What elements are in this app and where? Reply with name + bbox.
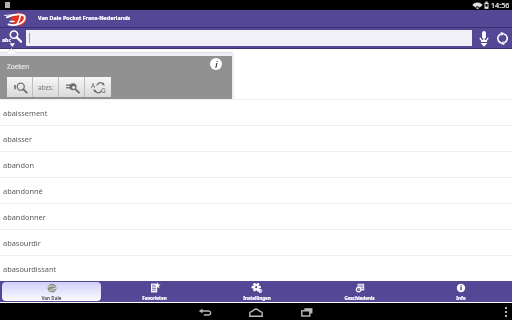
button[interactable]: Word search bbox=[7, 77, 33, 97]
staticText: Van Dale Pocket Frans-Nederlands bbox=[38, 14, 131, 21]
button[interactable]: Home bbox=[245, 305, 267, 319]
button[interactable]: Swap languages bbox=[493, 28, 512, 48]
button[interactable]: abasourdissant bbox=[0, 256, 512, 281]
staticText: abc bbox=[2, 36, 12, 43]
staticText: Favorieten bbox=[142, 295, 167, 301]
staticText: abandon bbox=[3, 160, 34, 170]
staticText: abandonner bbox=[3, 212, 46, 222]
button[interactable]: Voice search bbox=[474, 28, 493, 48]
button[interactable]: abandonné bbox=[0, 178, 512, 203]
staticText: Geschiedenis bbox=[344, 295, 375, 301]
staticText: Info bbox=[456, 295, 466, 301]
button[interactable]: abasourdir bbox=[0, 230, 512, 255]
button[interactable]: Back bbox=[194, 305, 216, 319]
button[interactable]: Search mode bbox=[0, 28, 26, 48]
button[interactable] bbox=[26, 30, 472, 46]
button[interactable]: abandon bbox=[0, 152, 512, 177]
staticText: Zoeken bbox=[7, 62, 30, 71]
button[interactable]: abaisser bbox=[0, 126, 512, 151]
button[interactable]: Translate direction bbox=[85, 77, 111, 97]
staticText: abaissement bbox=[3, 108, 48, 118]
button[interactable]: Phonetic search bbox=[33, 77, 59, 97]
button[interactable]: Instellingen bbox=[208, 282, 306, 301]
staticText: əbɛsː bbox=[38, 83, 55, 92]
staticText: G bbox=[101, 86, 106, 95]
staticText: abasourdissant bbox=[3, 264, 57, 274]
button[interactable]: More options bbox=[505, 307, 507, 317]
staticText: Instellingen bbox=[243, 295, 271, 301]
button[interactable]: Favorieten bbox=[105, 282, 204, 301]
staticText: abandonné bbox=[3, 186, 43, 196]
staticText: abaisser bbox=[3, 134, 33, 144]
button[interactable]: Advanced search bbox=[59, 77, 85, 97]
staticText: A bbox=[91, 81, 96, 90]
button[interactable]: Recents bbox=[296, 305, 318, 319]
staticText: i bbox=[215, 58, 218, 70]
button[interactable]: abaissement bbox=[0, 100, 512, 125]
button[interactable]: Geschiedenis bbox=[310, 282, 408, 301]
button[interactable]: Info bbox=[412, 282, 510, 301]
staticText: abasourdir bbox=[3, 238, 41, 248]
staticText: Van Dale bbox=[41, 295, 62, 301]
button[interactable]: Info bbox=[210, 58, 222, 70]
button[interactable]: abandonner bbox=[0, 204, 512, 229]
staticText: 14:56 bbox=[491, 0, 510, 10]
button[interactable]: Van Dale bbox=[2, 282, 101, 301]
